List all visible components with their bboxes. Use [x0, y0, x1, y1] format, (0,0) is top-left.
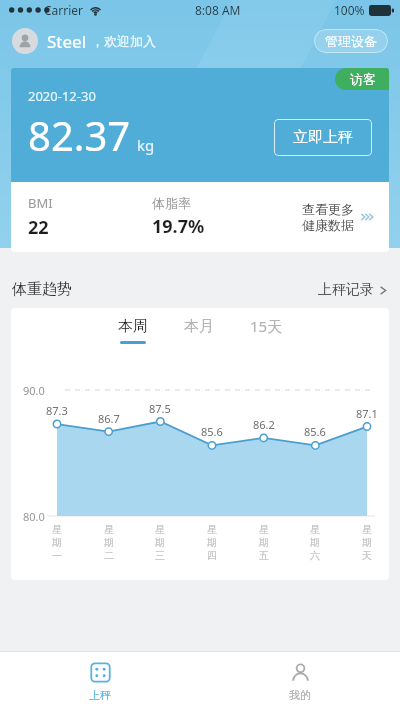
staticText: 三 [155, 549, 165, 562]
staticText: 19.7% [152, 214, 205, 239]
staticText: 80.0 [23, 509, 45, 524]
staticText: 体脂率 [152, 195, 191, 211]
staticText: 星 [310, 523, 320, 536]
staticText: 本周 [118, 317, 148, 336]
staticText: 期 [310, 536, 320, 549]
staticText: 期 [52, 536, 62, 549]
staticText: 87.5 [149, 401, 171, 416]
staticText: 期 [259, 536, 269, 549]
staticText: 期 [362, 536, 372, 549]
staticText: 天 [362, 549, 372, 562]
button[interactable]: 查看更多 [302, 201, 389, 233]
button[interactable]: 上秤记录 [318, 281, 388, 299]
staticText: 星 [207, 523, 217, 536]
staticText: 星 [52, 523, 62, 536]
staticText: 85.6 [201, 424, 223, 439]
staticText: 90.0 [23, 383, 45, 398]
staticText: 86.7 [98, 411, 120, 426]
staticText: 100% [334, 2, 365, 18]
staticText: 健康数据 [302, 217, 354, 233]
staticText: Steel [47, 30, 87, 53]
staticText: 我的 [289, 688, 311, 702]
staticText: 86.2 [253, 417, 275, 432]
staticText: 查看更多 [302, 201, 354, 217]
staticText: BMI [28, 194, 53, 212]
other: 上秤 [89, 661, 112, 684]
button[interactable]: 立即上秤 [274, 119, 372, 156]
staticText: 星 [155, 523, 165, 536]
staticText: 87.1 [356, 406, 378, 421]
staticText: 四 [207, 549, 217, 562]
staticText: 立即上秤 [293, 128, 353, 147]
button[interactable]: 上秤 [0, 652, 200, 710]
button[interactable]: 我的 [200, 652, 400, 710]
staticText: 五 [259, 549, 269, 562]
button[interactable]: 管理设备 [314, 29, 388, 53]
staticText: Carrier [44, 2, 84, 18]
button[interactable]: 15天 [247, 316, 286, 344]
staticText: 82.37 [28, 108, 131, 162]
staticText: 期 [104, 536, 114, 549]
staticText: 期 [207, 536, 217, 549]
button[interactable]: 本周 [115, 317, 151, 344]
staticText: 管理设备 [325, 33, 377, 49]
staticText: 2020-12-30 [28, 87, 96, 105]
staticText: kg [137, 135, 155, 155]
staticText: ，欢迎加入 [91, 33, 156, 49]
button[interactable]: 本月 [181, 317, 217, 344]
staticText: 体重趋势 [12, 280, 72, 299]
staticText: 二 [104, 549, 114, 562]
staticText: 星 [259, 523, 269, 536]
staticText: 22 [28, 215, 49, 240]
staticText: 星 [104, 523, 114, 536]
button[interactable]: 访客 [335, 68, 389, 90]
staticText: 8:08 AM [195, 2, 241, 18]
staticText: 87.3 [46, 403, 68, 418]
staticText: 星 [362, 523, 372, 536]
staticText: 上秤 [89, 688, 111, 702]
staticText: 上秤记录 [318, 281, 374, 299]
staticText: 一 [52, 549, 62, 562]
staticText: 15天 [250, 316, 283, 336]
other: 我的 [289, 661, 312, 684]
staticText: 85.6 [304, 424, 326, 439]
staticText: 六 [310, 549, 320, 562]
staticText: 本月 [184, 317, 214, 336]
staticText: 期 [155, 536, 165, 549]
staticText: 访客 [350, 71, 376, 87]
